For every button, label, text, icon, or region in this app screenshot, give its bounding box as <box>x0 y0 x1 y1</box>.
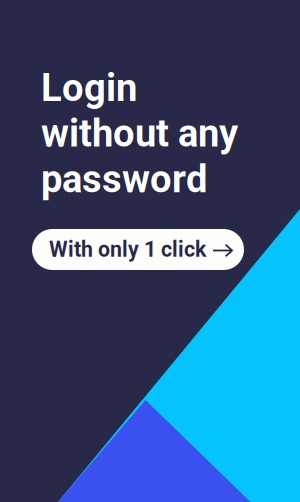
staticText: With only 1 click <box>49 237 206 262</box>
staticText: password <box>41 157 207 202</box>
staticText: without any <box>41 111 238 156</box>
button[interactable]: With only 1 click <box>32 229 244 270</box>
staticText: Login <box>41 65 137 110</box>
